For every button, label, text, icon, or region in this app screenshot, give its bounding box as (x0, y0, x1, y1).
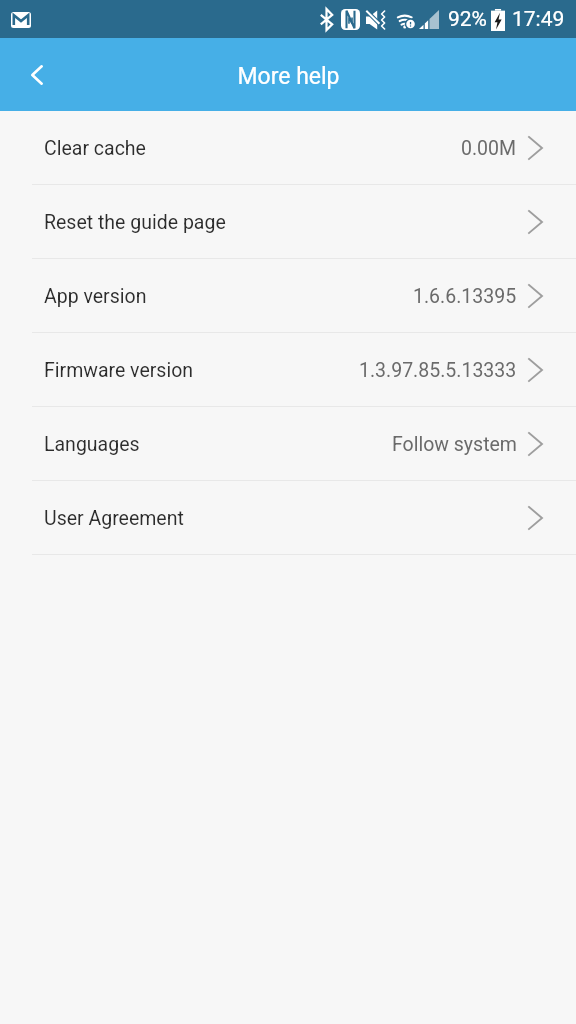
staticText: 92% (448, 7, 487, 32)
staticText: User Agreement (44, 507, 184, 530)
staticText: More help (237, 63, 340, 90)
staticText: Languages (44, 433, 140, 456)
button[interactable]: Firmware version (0, 333, 576, 407)
staticText: 1.3.97.85.5.13333 (359, 359, 517, 382)
button[interactable]: Back (0, 38, 72, 111)
staticText: Follow system (392, 433, 517, 456)
button[interactable]: App version (0, 259, 576, 333)
button[interactable]: Reset the guide page (0, 185, 576, 259)
staticText: 17:49 (512, 7, 565, 32)
button[interactable]: User Agreement (0, 481, 576, 555)
staticText: Reset the guide page (44, 211, 226, 234)
staticText: 0.00M (461, 137, 517, 160)
staticText: App version (44, 285, 147, 308)
button[interactable]: Languages (0, 407, 576, 481)
button[interactable]: Clear cache (0, 111, 576, 185)
staticText: Clear cache (44, 137, 146, 160)
staticText: Firmware version (44, 359, 194, 382)
staticText: 1.6.6.13395 (413, 285, 517, 308)
